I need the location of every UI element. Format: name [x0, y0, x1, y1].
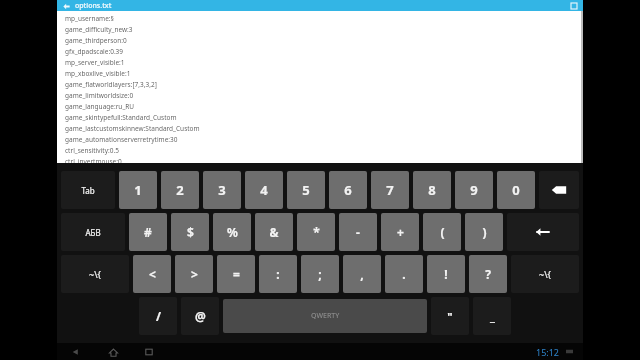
- staticText: mp_server_visible:1: [65, 58, 125, 67]
- button[interactable]: Back: [67, 344, 83, 360]
- button[interactable]: =: [217, 255, 255, 293]
- button[interactable]: _: [473, 297, 511, 335]
- staticText: <: [149, 266, 156, 282]
- staticText: +: [397, 224, 404, 240]
- button[interactable]: ~\{: [511, 255, 579, 293]
- staticText: &: [269, 224, 279, 240]
- button[interactable]: .: [385, 255, 423, 293]
- staticText: ": [447, 309, 453, 324]
- staticText: /: [156, 308, 161, 324]
- button[interactable]: ?: [469, 255, 507, 293]
- button[interactable]: 8: [413, 171, 451, 209]
- staticText: АБВ: [85, 227, 101, 238]
- button[interactable]: 2: [161, 171, 199, 209]
- button[interactable]: -: [339, 213, 377, 251]
- staticText: game_skintypefull:Standard_Custom: [65, 113, 177, 122]
- button[interactable]: 7: [371, 171, 409, 209]
- staticText: ;: [318, 266, 322, 282]
- staticText: 6: [344, 181, 352, 199]
- staticText: mp_username:§: [65, 14, 114, 23]
- staticText: 8: [428, 181, 436, 199]
- staticText: ): [482, 224, 487, 240]
- button[interactable]: :: [259, 255, 297, 293]
- staticText: 2: [176, 181, 184, 199]
- staticText: .: [402, 266, 406, 282]
- staticText: -: [356, 224, 360, 240]
- button[interactable]: 1: [119, 171, 157, 209]
- staticText: =: [233, 266, 240, 282]
- staticText: >: [191, 266, 198, 282]
- staticText: (: [440, 224, 445, 240]
- button[interactable]: $: [171, 213, 209, 251]
- staticText: ?: [485, 266, 491, 282]
- button[interactable]: !: [427, 255, 465, 293]
- staticText: @: [195, 308, 206, 324]
- staticText: ctrl_invertmouse:0: [65, 157, 122, 163]
- button[interactable]: Save: [569, 1, 579, 11]
- button[interactable]: ,: [343, 255, 381, 293]
- staticText: %: [227, 224, 238, 240]
- staticText: 4: [260, 181, 268, 199]
- button[interactable]: /: [139, 297, 177, 335]
- staticText: *: [313, 224, 320, 240]
- button[interactable]: &: [255, 213, 293, 251]
- staticText: gfx_dpadscale:0.39: [65, 47, 124, 56]
- staticText: #: [144, 224, 152, 240]
- staticText: ~\{: [89, 268, 101, 280]
- staticText: ,: [360, 266, 364, 282]
- staticText: game_limitworldsize:0: [65, 91, 134, 100]
- staticText: ctrl_sensitivity:0.5: [65, 146, 119, 155]
- button[interactable]: >: [175, 255, 213, 293]
- staticText: game_flatworldlayers:[7,3,3,2]: [65, 80, 157, 89]
- staticText: game_thirdperson:0: [65, 36, 127, 45]
- staticText: mp_xboxlive_visible:1: [65, 69, 131, 78]
- button[interactable]: 3: [203, 171, 241, 209]
- button[interactable]: *: [297, 213, 335, 251]
- button[interactable]: <: [133, 255, 171, 293]
- staticText: 15:12: [536, 346, 560, 358]
- button[interactable]: Home: [105, 344, 121, 360]
- button[interactable]: Back: [61, 1, 71, 11]
- staticText: game_language:ru_RU: [65, 102, 135, 111]
- staticText: game_lastcustomskinnew:Standard_Custom: [65, 124, 200, 133]
- staticText: 9: [470, 181, 478, 199]
- staticText: !: [444, 266, 448, 282]
- button[interactable]: (: [423, 213, 461, 251]
- staticText: game_automationserverretrytime:30: [65, 135, 178, 144]
- button[interactable]: ~\{: [61, 255, 129, 293]
- button[interactable]: Backspace: [539, 171, 579, 209]
- button[interactable]: #: [129, 213, 167, 251]
- staticText: 0: [512, 181, 520, 199]
- staticText: 3: [218, 181, 226, 199]
- button[interactable]: 5: [287, 171, 325, 209]
- button[interactable]: +: [381, 213, 419, 251]
- staticText: game_difficulty_new:3: [65, 25, 133, 34]
- button[interactable]: ": [431, 297, 469, 335]
- staticText: _: [490, 308, 495, 324]
- staticText: 1: [134, 181, 142, 199]
- button[interactable]: Recent apps: [141, 344, 157, 360]
- staticText: QWERTY: [311, 311, 340, 321]
- staticText: 7: [386, 181, 394, 199]
- button[interactable]: 9: [455, 171, 493, 209]
- button[interactable]: ;: [301, 255, 339, 293]
- button[interactable]: Enter: [507, 213, 579, 251]
- button[interactable]: QWERTY: [223, 299, 427, 333]
- button[interactable]: АБВ: [61, 213, 125, 251]
- staticText: Tab: [81, 185, 95, 196]
- staticText: 5: [302, 181, 310, 199]
- button[interactable]: Tab: [61, 171, 115, 209]
- button[interactable]: 4: [245, 171, 283, 209]
- button[interactable]: @: [181, 297, 219, 335]
- staticText: options.txt: [75, 1, 112, 11]
- staticText: $: [187, 224, 194, 240]
- button[interactable]: ): [465, 213, 503, 251]
- button[interactable]: 0: [497, 171, 535, 209]
- button[interactable]: 6: [329, 171, 367, 209]
- staticText: :: [276, 266, 280, 282]
- button[interactable]: %: [213, 213, 251, 251]
- staticText: ~\{: [539, 268, 551, 280]
